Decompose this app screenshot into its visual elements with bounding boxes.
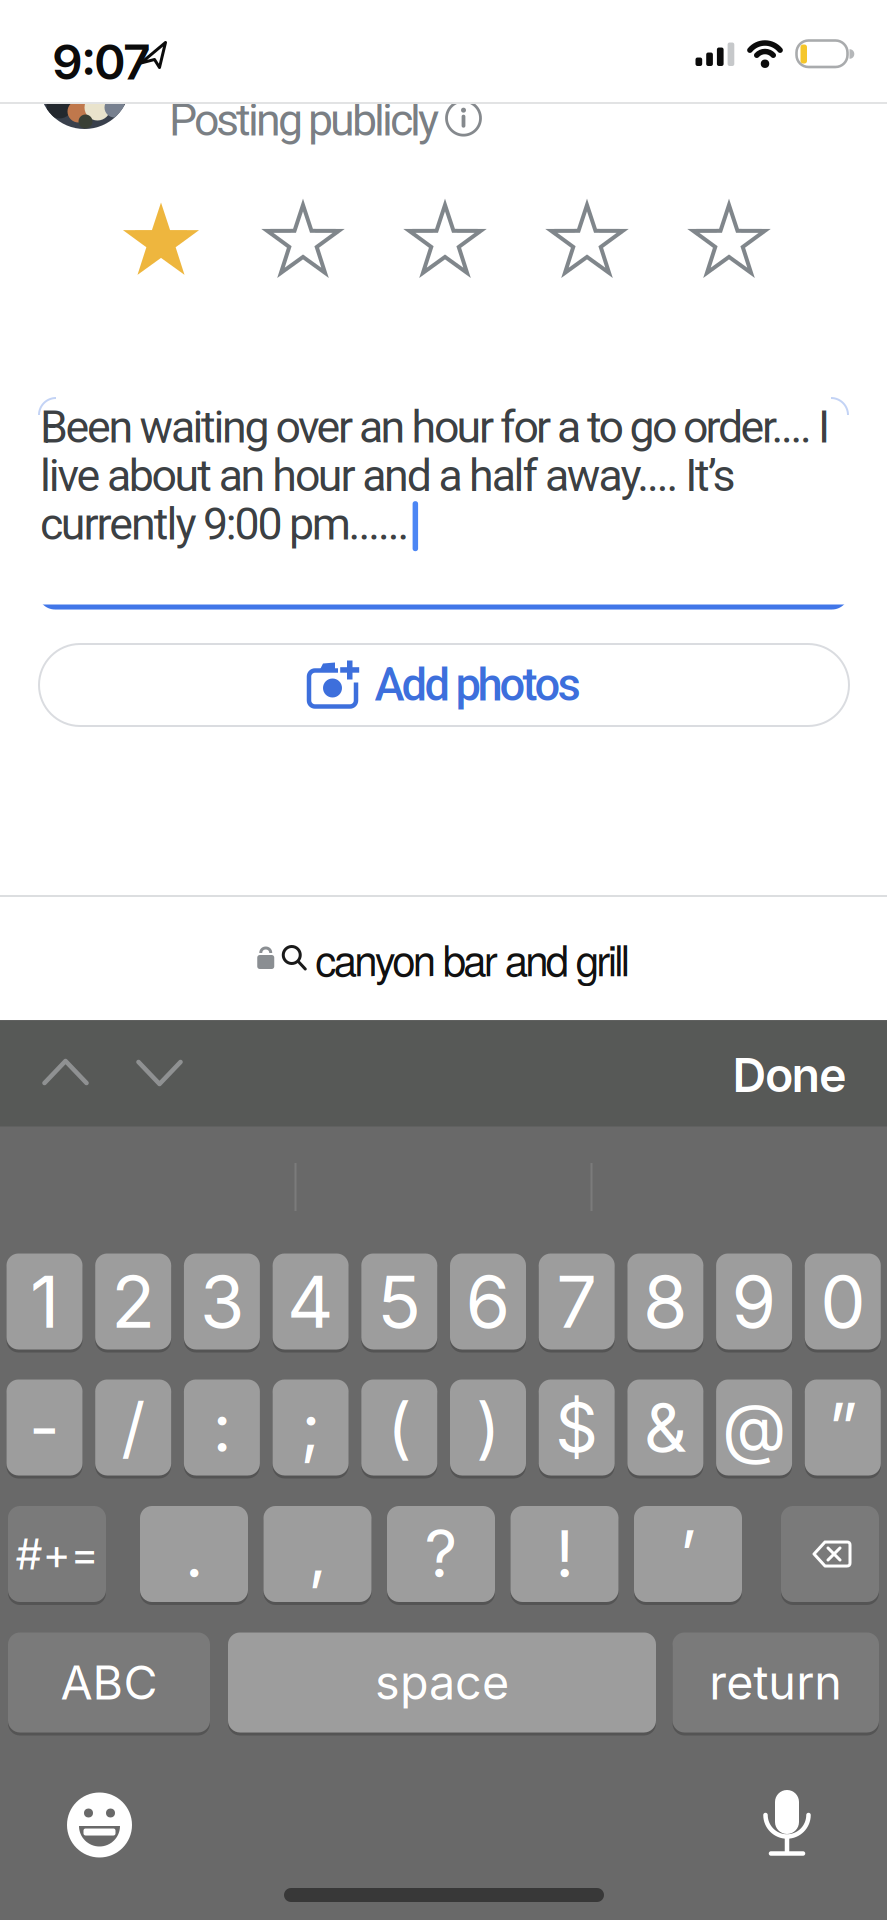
staticText: canyon bar and grill (315, 928, 630, 988)
staticText: ) (476, 1387, 500, 1468)
staticText: - (29, 1387, 60, 1468)
button[interactable]: ’ (634, 1504, 742, 1603)
button[interactable]: canyon bar and grill (0, 918, 887, 998)
button[interactable]: 5 (361, 1252, 437, 1351)
staticText: ” (828, 1387, 857, 1468)
button[interactable]: Done (687, 1040, 847, 1110)
button[interactable]: ! (510, 1504, 618, 1603)
button[interactable]: & (627, 1378, 703, 1477)
button[interactable]: , (263, 1504, 371, 1603)
staticText: 6 (465, 1258, 510, 1345)
staticText: 8 (643, 1258, 688, 1345)
staticText: ! (555, 1515, 573, 1593)
button[interactable]: 9 (716, 1252, 792, 1351)
staticText: Done (732, 1047, 847, 1103)
staticText: 2 (111, 1258, 155, 1345)
button[interactable]: ; (273, 1378, 349, 1477)
button[interactable]: 7 (539, 1252, 615, 1351)
staticText: ABC (60, 1654, 157, 1711)
staticText: 4 (287, 1258, 334, 1345)
staticText: ( (387, 1387, 411, 1468)
button[interactable]: 8 (627, 1252, 703, 1351)
staticText: live about an hour and a half away.... I… (40, 449, 736, 502)
button[interactable]: 2 stars (0, 0, 887, 400)
button[interactable]: ABC (8, 1631, 210, 1734)
button[interactable]: ) (450, 1378, 526, 1477)
button[interactable]: 1 star (0, 0, 887, 400)
staticText: Been waiting over an hour for a to go or… (40, 401, 830, 453)
button[interactable]: return (672, 1631, 879, 1734)
staticText: currently 9:00 pm...... (40, 498, 410, 550)
staticText: : (212, 1387, 231, 1468)
button[interactable]: @ (716, 1378, 792, 1477)
button[interactable]: 0 (805, 1252, 881, 1351)
button[interactable]: 6 (450, 1252, 526, 1351)
button[interactable]: Emoji (59, 1785, 139, 1865)
button[interactable]: Next field (0, 0, 887, 1920)
button[interactable]: : (184, 1378, 260, 1477)
button[interactable]: 3 stars (0, 0, 887, 400)
staticText: 5 (377, 1258, 421, 1345)
staticText: 3 (200, 1258, 244, 1345)
button[interactable]: space (228, 1631, 656, 1734)
staticText: $ (555, 1387, 598, 1468)
staticText: 9:07 (52, 33, 151, 91)
button[interactable]: #+= (8, 1504, 106, 1603)
staticText: / (121, 1387, 145, 1468)
button[interactable]: Dictate (757, 1782, 817, 1862)
button[interactable]: 4 (273, 1252, 349, 1351)
staticText: 9 (732, 1258, 777, 1345)
staticText: space (375, 1654, 509, 1711)
button[interactable]: - (6, 1378, 82, 1477)
button[interactable]: 5 stars (0, 0, 887, 400)
button[interactable]: 1 (6, 1252, 82, 1351)
button[interactable]: 4 stars (0, 0, 887, 400)
button[interactable]: . (140, 1504, 248, 1603)
button[interactable]: Delete (781, 1504, 879, 1603)
button[interactable]: ” (805, 1378, 881, 1477)
staticText: Add photos (374, 658, 580, 711)
staticText: , (308, 1515, 326, 1593)
button[interactable]: / (95, 1378, 171, 1477)
button[interactable]: Previous field (0, 0, 887, 1920)
button[interactable]: 2 (95, 1252, 171, 1351)
staticText: return (709, 1654, 842, 1711)
staticText: 7 (556, 1258, 597, 1345)
staticText: ’ (679, 1515, 696, 1593)
button[interactable]: ( (361, 1378, 437, 1477)
staticText: 0 (820, 1258, 865, 1345)
staticText: & (644, 1387, 687, 1468)
staticText: 1 (30, 1258, 59, 1345)
button[interactable]: 3 (184, 1252, 260, 1351)
staticText: . (185, 1515, 203, 1593)
button[interactable]: Add photos (39, 644, 849, 726)
button[interactable]: $ (539, 1378, 615, 1477)
staticText: Posting publicly (169, 94, 439, 146)
staticText: @ (722, 1387, 786, 1468)
staticText: ; (301, 1387, 321, 1468)
staticText: ? (424, 1515, 457, 1593)
staticText: #+= (15, 1528, 98, 1580)
button[interactable]: ? (387, 1504, 495, 1603)
